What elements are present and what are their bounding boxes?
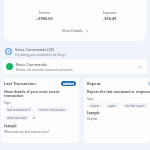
button[interactable]: Last Transaction xyxy=(1,78,79,143)
staticText: do that again xyxy=(125,104,145,108)
staticText: recent transaction xyxy=(39,108,66,112)
button[interactable]: Basic Commands xyxy=(3,59,147,74)
staticText: assistant xyxy=(63,82,74,85)
staticText: last transaction? xyxy=(7,108,31,112)
staticText: Basic Commands xyxy=(16,62,48,67)
staticText: +$980.00 xyxy=(36,16,53,21)
staticText: Repeat xyxy=(87,81,101,86)
staticText: Show details of your most recent transac… xyxy=(4,89,76,98)
staticText: Repeat the last command or response xyxy=(87,89,150,94)
staticText: Voice Commands (25) xyxy=(15,47,55,52)
button[interactable]: repeat xyxy=(87,103,103,108)
button[interactable]: do that again xyxy=(122,103,148,108)
staticText: Repeat xyxy=(87,117,98,121)
staticText: Example xyxy=(87,111,100,115)
button[interactable]: Voice xyxy=(5,44,145,59)
button[interactable]: again xyxy=(105,103,120,108)
staticText: Last Transaction xyxy=(4,81,61,86)
button[interactable]: assistant xyxy=(84,78,150,143)
button[interactable]: what was last xyxy=(4,115,30,120)
staticText: Try asking your assistant to do things xyxy=(15,53,66,57)
staticText: Says xyxy=(87,97,94,101)
staticText: Income xyxy=(39,11,51,15)
staticText: what was last xyxy=(7,116,27,120)
button[interactable]: View Details xyxy=(60,27,91,34)
button[interactable]: recent transaction xyxy=(36,107,69,112)
other: Voice xyxy=(5,48,12,55)
staticText: again xyxy=(108,104,117,108)
staticText: -$50.49 xyxy=(103,16,117,21)
staticText: Expenses xyxy=(103,11,117,15)
staticText: repeat xyxy=(90,104,100,108)
staticText: Example xyxy=(4,124,17,128)
staticText: Browse the essential assistant commands xyxy=(16,68,73,72)
staticText: Says xyxy=(4,101,11,105)
staticText: View Details xyxy=(62,28,83,33)
staticText: What was my last transaction? xyxy=(4,130,50,134)
button[interactable]: last transaction? xyxy=(4,107,34,112)
staticText: +3 xyxy=(32,116,36,120)
